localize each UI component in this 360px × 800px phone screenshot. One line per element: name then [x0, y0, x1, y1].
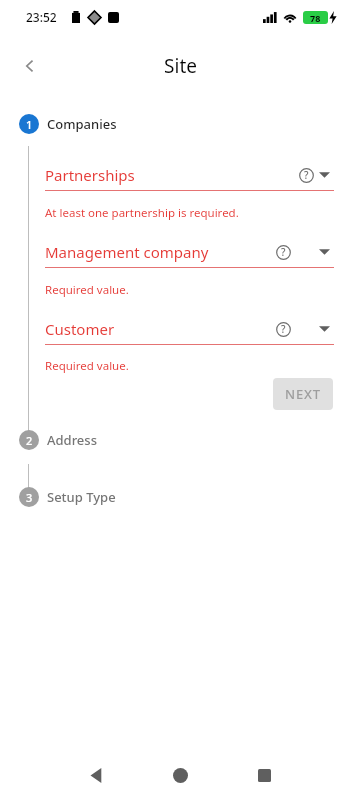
- staticText: ?: [281, 245, 286, 259]
- staticText: Customer: [45, 319, 115, 339]
- staticText: Companies: [47, 115, 117, 133]
- button[interactable]: Open dropdown: [311, 315, 337, 341]
- button[interactable]: Back: [8, 44, 52, 88]
- staticText: 23:52: [26, 9, 57, 25]
- button[interactable]: Home: [156, 751, 204, 799]
- staticText: ?: [304, 168, 309, 182]
- staticText: Management company: [45, 242, 209, 262]
- staticText: Setup Type: [47, 488, 116, 506]
- button[interactable]: Partnerships: [45, 160, 334, 190]
- staticText: 78: [310, 12, 321, 24]
- staticText: At least one partnership is required.: [45, 205, 239, 221]
- staticText: 1: [26, 117, 33, 132]
- staticText: Required value.: [45, 358, 129, 374]
- button[interactable]: Open dropdown: [311, 238, 337, 264]
- button[interactable]: Management company: [45, 237, 334, 267]
- button[interactable]: 1: [0, 110, 360, 138]
- button[interactable]: Help: [292, 161, 320, 189]
- button[interactable]: 2: [0, 426, 360, 454]
- button[interactable]: Back: [72, 751, 120, 799]
- staticText: Site: [164, 53, 197, 79]
- button[interactable]: NEXT: [273, 378, 333, 410]
- staticText: Required value.: [45, 282, 129, 298]
- button[interactable]: Help: [269, 315, 297, 343]
- button[interactable]: Customer: [45, 314, 334, 344]
- staticText: 2: [26, 433, 33, 448]
- staticText: 3: [26, 490, 33, 505]
- staticText: ?: [281, 322, 286, 336]
- button[interactable]: Recents: [240, 751, 288, 799]
- button[interactable]: 3: [0, 483, 360, 511]
- staticText: NEXT: [285, 385, 321, 403]
- button[interactable]: Help: [269, 238, 297, 266]
- staticText: Address: [47, 431, 97, 449]
- staticText: Partnerships: [45, 165, 135, 185]
- button[interactable]: Open dropdown: [311, 161, 337, 187]
